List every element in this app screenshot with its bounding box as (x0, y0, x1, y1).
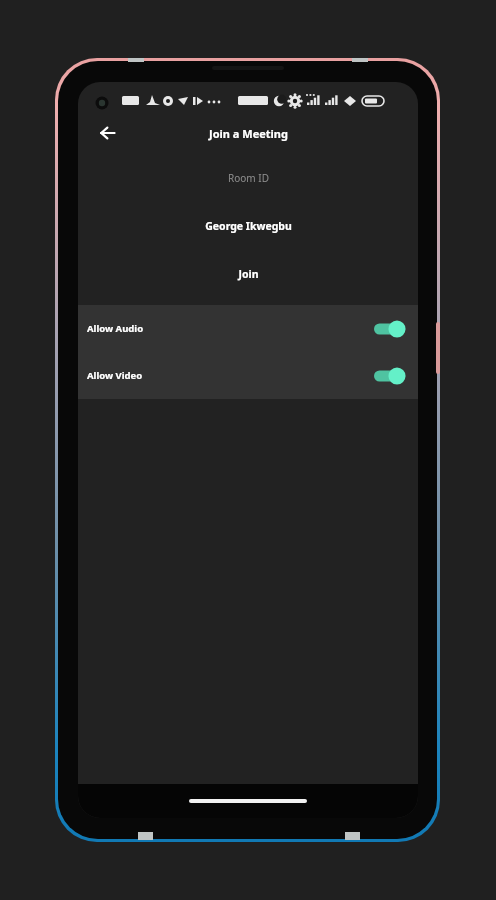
button[interactable]: Room ID (78, 154, 418, 202)
button[interactable]: George Ikwegbu (78, 202, 418, 249)
button[interactable]: Allow Audio (374, 320, 406, 338)
staticText: Join a Meeting (209, 126, 288, 141)
staticText: Join (238, 267, 259, 281)
button[interactable]: Allow Audio (78, 305, 418, 352)
button[interactable]: Back (90, 116, 124, 150)
staticText: George Ikwegbu (205, 219, 292, 233)
staticText: Room ID (228, 171, 269, 185)
staticText: Allow Audio (87, 322, 374, 335)
button[interactable]: Allow Video (374, 367, 406, 385)
button[interactable]: Allow Video (78, 352, 418, 399)
button[interactable]: Join (78, 249, 418, 299)
staticText: Allow Video (87, 369, 374, 382)
